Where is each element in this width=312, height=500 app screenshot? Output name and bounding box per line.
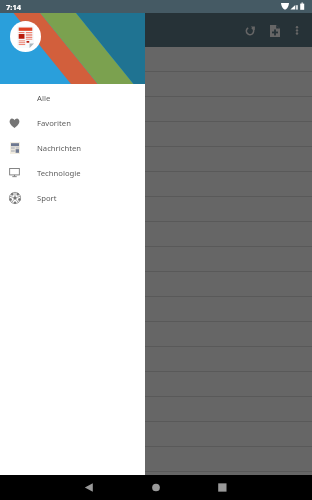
button[interactable] [0, 397, 312, 422]
staticText: Favoriten [37, 118, 71, 128]
button[interactable]: Alle [0, 85, 145, 110]
button[interactable]: Recent apps [206, 475, 238, 500]
button[interactable] [0, 122, 312, 147]
button[interactable]: New article [262, 14, 287, 47]
button[interactable] [0, 447, 312, 472]
button[interactable]: Sport [0, 185, 145, 210]
staticText: 7:14 [6, 2, 21, 12]
button[interactable] [0, 222, 312, 247]
staticText: Sport [37, 193, 57, 203]
button[interactable] [0, 72, 312, 97]
button[interactable]: Refresh [238, 14, 262, 47]
button[interactable] [0, 372, 312, 397]
button[interactable] [0, 297, 312, 322]
staticText: Nachrichten [37, 143, 82, 153]
button[interactable] [0, 97, 312, 122]
button[interactable]: Favoriten [0, 110, 145, 135]
button[interactable] [0, 322, 312, 347]
button[interactable] [0, 197, 312, 222]
button[interactable] [0, 172, 312, 197]
button[interactable]: More options [287, 14, 312, 47]
button[interactable]: Back [73, 475, 105, 500]
staticText: Technologie [37, 168, 81, 178]
button[interactable] [0, 47, 312, 72]
button[interactable] [0, 272, 312, 297]
button[interactable] [0, 247, 312, 272]
button[interactable]: App logo [10, 21, 41, 52]
button[interactable]: Technologie [0, 160, 145, 185]
button[interactable] [0, 347, 312, 372]
button[interactable]: Nachrichten [0, 135, 145, 160]
button[interactable] [0, 147, 312, 172]
button[interactable] [0, 422, 312, 447]
staticText: Alle [37, 93, 51, 103]
button[interactable]: Home [140, 475, 172, 500]
